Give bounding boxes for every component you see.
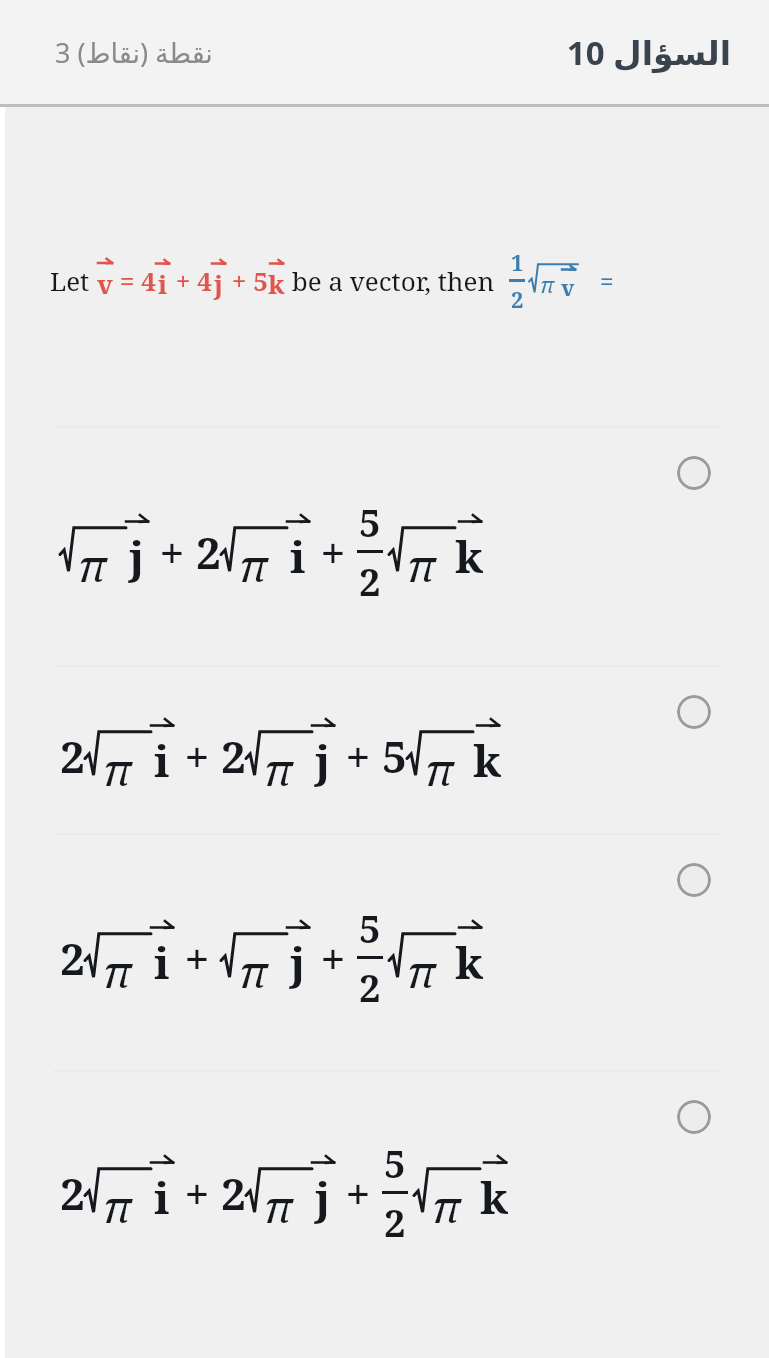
- staticText: 2: [384, 1196, 406, 1248]
- staticText: k: [480, 1167, 509, 1227]
- button[interactable]: Option 4: [677, 1100, 711, 1134]
- staticText: 5: [359, 496, 381, 548]
- staticText: +: [309, 928, 357, 988]
- staticText: 2: [60, 726, 85, 786]
- staticText: j: [214, 266, 223, 301]
- staticText: j: [315, 730, 331, 790]
- staticText: +: [173, 1163, 221, 1223]
- staticText: v: [561, 272, 575, 302]
- staticText: السؤال 10: [566, 30, 731, 75]
- staticText: π: [425, 739, 454, 799]
- staticText: k: [455, 526, 484, 586]
- staticText: +: [309, 522, 357, 582]
- staticText: k: [455, 932, 484, 992]
- staticText: i: [158, 266, 168, 301]
- staticText: π: [540, 269, 555, 299]
- staticText: 2: [359, 961, 381, 1013]
- staticText: 3 نقطة (نقاط): [55, 34, 213, 71]
- staticText: 2: [60, 928, 85, 988]
- staticText: k: [268, 266, 285, 301]
- staticText: π: [78, 535, 107, 595]
- staticText: =: [600, 264, 614, 297]
- staticText: π: [407, 535, 436, 595]
- staticText: π: [239, 941, 268, 1001]
- staticText: +: [173, 928, 221, 988]
- staticText: π: [407, 941, 436, 1001]
- staticText: π: [103, 941, 132, 1001]
- staticText: 2: [221, 726, 246, 786]
- staticText: 2: [511, 284, 524, 314]
- staticText: +: [334, 1163, 382, 1223]
- staticText: i: [154, 730, 170, 790]
- staticText: 2: [221, 1163, 246, 1223]
- button[interactable]: Option 1: [677, 456, 711, 490]
- staticText: = 4: [113, 263, 156, 298]
- staticText: + 5: [225, 263, 268, 298]
- staticText: +: [334, 726, 382, 786]
- staticText: i: [154, 932, 170, 992]
- button[interactable]: π: [0, 428, 769, 665]
- staticText: 2: [60, 1163, 85, 1223]
- staticText: π: [432, 1176, 461, 1236]
- button[interactable]: Option 3: [677, 863, 711, 897]
- staticText: v: [97, 266, 113, 301]
- staticText: π: [103, 1176, 132, 1236]
- button[interactable]: 2: [0, 1072, 769, 1302]
- staticText: +: [148, 522, 196, 582]
- staticText: +: [173, 726, 221, 786]
- button[interactable]: Option 2: [677, 695, 711, 729]
- staticText: j: [129, 526, 145, 586]
- staticText: 1: [511, 247, 524, 277]
- staticText: π: [264, 1176, 293, 1236]
- button[interactable]: 2: [0, 667, 769, 833]
- staticText: π: [103, 739, 132, 799]
- staticText: π: [264, 739, 293, 799]
- staticText: Let: [50, 263, 97, 298]
- staticText: 5: [382, 726, 407, 786]
- staticText: 2: [196, 522, 221, 582]
- staticText: 5: [359, 902, 381, 954]
- staticText: + 4: [169, 263, 212, 298]
- staticText: j: [315, 1167, 331, 1227]
- staticText: π: [239, 535, 268, 595]
- button[interactable]: 2: [0, 835, 769, 1070]
- staticText: j: [290, 932, 306, 992]
- staticText: be a vector, then: [285, 263, 495, 298]
- staticText: k: [473, 730, 502, 790]
- staticText: 5: [384, 1137, 406, 1189]
- staticText: i: [290, 526, 306, 586]
- staticText: i: [154, 1167, 170, 1227]
- staticText: 2: [359, 555, 381, 607]
